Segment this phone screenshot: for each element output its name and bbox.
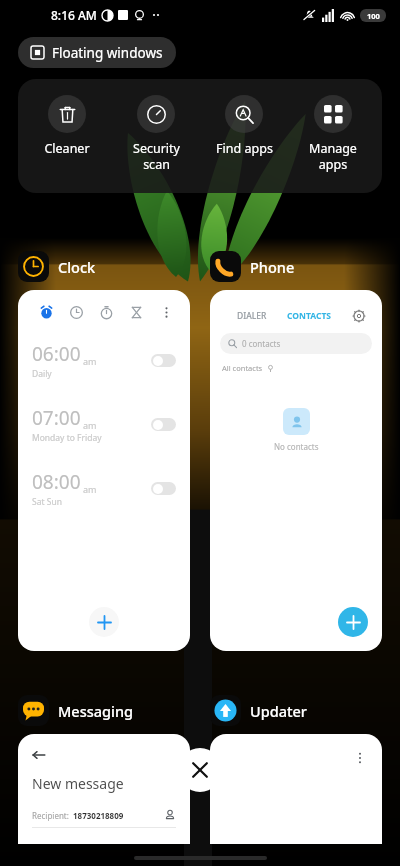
button[interactable]: 06:00 [18,341,190,380]
button[interactable]: Find apps [204,95,284,157]
staticText: 8:16 AM [51,7,97,23]
button[interactable]: 07:00 [18,405,190,444]
staticText: Daily [32,368,52,380]
button[interactable]: 0 contacts [220,333,372,354]
staticText: am [83,355,97,367]
staticText: am [83,483,97,495]
staticText: All contacts [222,363,263,373]
staticText: 07:00 [32,405,81,431]
button[interactable]: Security scan [116,95,196,172]
staticText: 18730218809 [73,810,124,821]
staticText: Manage apps [309,140,357,172]
button[interactable]: DIALER [210,290,382,651]
button[interactable]: Settings [353,310,365,322]
button[interactable]: Back [32,748,46,762]
staticText: Monday to Friday [32,432,102,444]
button[interactable]: Add contact [338,607,368,637]
staticText: Updater [250,701,307,721]
staticText: Floating windows [52,44,163,62]
button[interactable]: Add alarm [89,607,119,637]
staticText: am [83,419,97,431]
button[interactable]: Manage apps [293,95,373,172]
button[interactable]: Cleaner [27,95,107,157]
staticText: Security scan [133,140,180,172]
staticText: Find apps [216,140,273,157]
staticText: Messaging [58,701,134,721]
staticText: 100 [367,11,380,21]
button[interactable]: Pick contact [164,809,176,821]
staticText: Recipient: [32,810,69,821]
staticText: New message [32,774,124,793]
staticText: 08:00 [32,469,81,495]
button[interactable]: CONTACTS [287,310,331,322]
button[interactable]: 06:00 [18,290,190,651]
button[interactable]: Alarm toggle [151,482,176,495]
button[interactable]: Floating windows [18,37,176,68]
button[interactable]: Alarm toggle [151,418,176,431]
staticText: CONTACTS [287,310,331,322]
button[interactable] [210,734,382,844]
button[interactable]: Back [18,734,190,844]
button[interactable]: Close all [178,748,222,792]
button[interactable]: 08:00 [18,469,190,508]
staticText: No contacts [274,441,319,452]
staticText: 06:00 [32,341,81,367]
button[interactable]: Alarm toggle [151,354,176,367]
staticText: 0 contacts [242,338,281,349]
button[interactable]: DIALER [237,310,267,322]
staticText: Clock [58,257,96,277]
staticText: Cleaner [44,140,90,157]
staticText: DIALER [237,310,267,322]
staticText: Sat Sun [32,496,62,508]
staticText: Phone [250,257,295,277]
